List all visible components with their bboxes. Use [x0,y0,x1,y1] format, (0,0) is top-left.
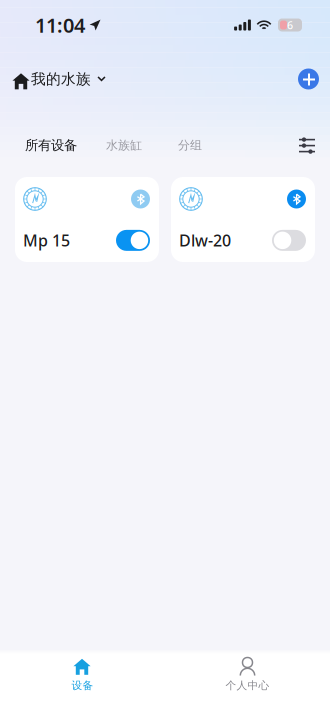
button[interactable]: Add device [298,68,319,89]
staticText: 个人中心 [225,679,269,692]
staticText: 6 [287,18,293,32]
staticText: 所有设备 [25,137,77,153]
button[interactable]: 水族缸 [77,138,142,152]
button[interactable]: 我的水族 [12,70,108,88]
button[interactable]: Dlw-20 [171,177,315,262]
button[interactable]: 个人中心 [165,658,330,692]
staticText: 11:04 [35,12,85,38]
button[interactable]: Filter [299,138,315,153]
staticText: 水族缸 [106,138,142,152]
staticText: Mp 15 [23,230,70,251]
button[interactable]: Mp 15 [15,177,159,262]
staticText: 我的水族 [31,70,91,88]
staticText: 设备 [71,679,93,692]
button[interactable]: 设备 [0,658,165,692]
button[interactable]: 分组 [142,138,202,152]
staticText: Dlw-20 [179,230,231,251]
button[interactable]: 所有设备 [25,137,77,153]
staticText: 分组 [178,138,202,152]
